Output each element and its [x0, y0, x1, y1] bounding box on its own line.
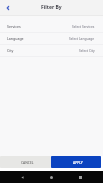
- button[interactable]: Back: [18, 173, 27, 182]
- button[interactable]: CANCEL: [0, 156, 51, 168]
- staticText: Select Language: [69, 37, 95, 41]
- button[interactable]: City: [0, 45, 103, 56]
- staticText: Select Services: [72, 25, 95, 29]
- button[interactable]: Home: [47, 173, 56, 182]
- staticText: Services: [7, 24, 21, 29]
- staticText: Filter By: [41, 4, 62, 11]
- button[interactable]: Recents: [76, 173, 85, 182]
- staticText: Select City: [79, 49, 95, 53]
- button[interactable]: Back: [0, 0, 14, 15]
- staticText: CANCEL: [21, 160, 34, 164]
- staticText: Language: [7, 36, 24, 41]
- staticText: APPLY: [73, 160, 83, 164]
- button[interactable]: APPLY: [51, 156, 101, 168]
- button[interactable]: Services: [0, 21, 103, 32]
- button[interactable]: Language: [0, 33, 103, 44]
- staticText: City: [7, 48, 14, 53]
